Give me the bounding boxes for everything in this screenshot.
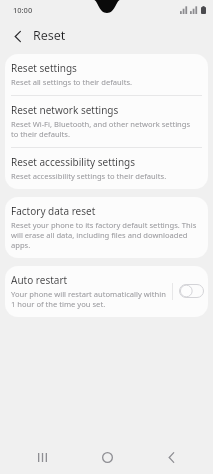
button[interactable]: Reset network settings <box>5 96 208 147</box>
button[interactable]: Home <box>85 442 129 473</box>
button[interactable]: Factory data reset <box>5 197 208 258</box>
staticText: Reset accessibility settings to their de… <box>11 171 167 181</box>
button[interactable]: Back <box>7 25 29 47</box>
button[interactable]: Reset accessibility settings <box>5 148 208 189</box>
staticText: 10:00 <box>13 5 33 15</box>
staticText: Reset all settings to their defaults. <box>11 77 133 87</box>
staticText: Auto restart <box>11 273 68 287</box>
button[interactable]: Back <box>149 442 193 473</box>
button[interactable]: Recent apps <box>20 442 64 473</box>
staticText: Reset your phone to its factory default … <box>11 220 197 250</box>
staticText: Reset <box>33 27 66 44</box>
staticText: Factory data reset <box>11 204 96 218</box>
staticText: Reset Wi-Fi, Bluetooth, and other networ… <box>11 119 197 139</box>
button[interactable]: Auto restart <box>177 281 205 301</box>
staticText: Reset network settings <box>11 103 119 117</box>
button[interactable]: Auto restart <box>5 266 208 317</box>
staticText: Reset accessibility settings <box>11 155 136 169</box>
staticText: Reset settings <box>11 61 77 75</box>
staticText: Your phone will restart automatically wi… <box>11 289 168 309</box>
button[interactable]: Reset settings <box>5 54 208 95</box>
